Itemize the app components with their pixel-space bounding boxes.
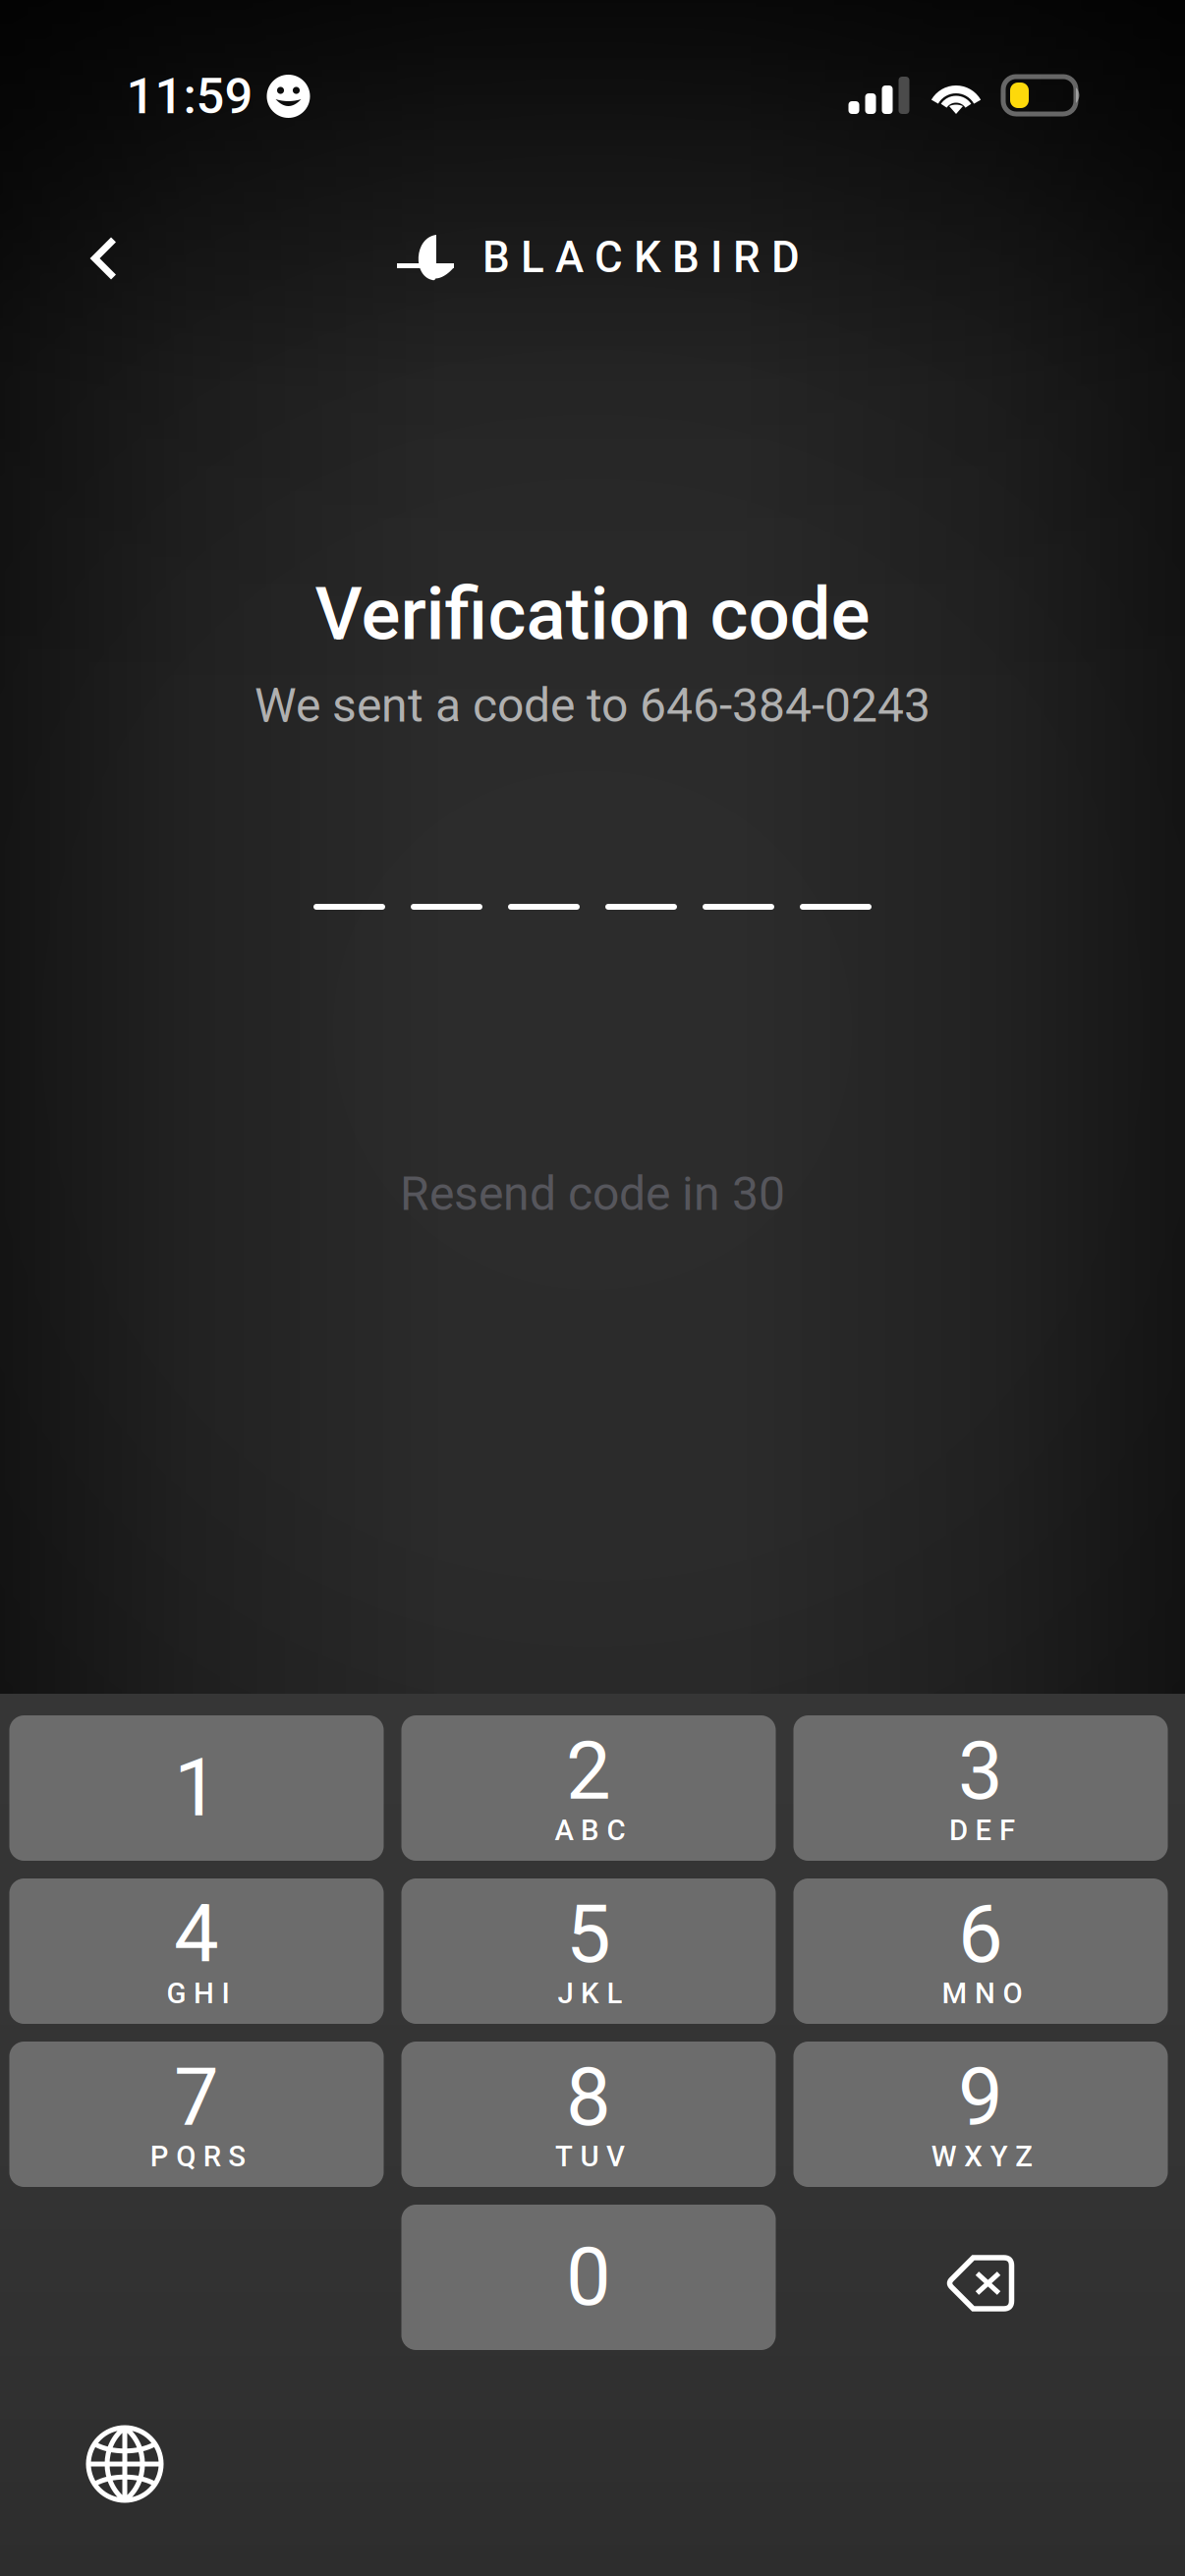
staticText: L — [521, 232, 544, 283]
button[interactable]: 9 — [793, 2042, 1168, 2187]
staticText: PQRS — [150, 2140, 246, 2173]
staticText: D — [771, 232, 800, 283]
button[interactable]: 5 — [401, 1878, 776, 2024]
staticText: 1 — [174, 1741, 219, 1835]
staticText: MNO — [942, 1977, 1022, 2010]
staticText: K — [634, 232, 661, 283]
button[interactable]: Back — [49, 202, 160, 314]
staticText: B — [672, 232, 700, 283]
button[interactable]: 4 — [9, 1878, 384, 2024]
button[interactable]: 6 — [793, 1878, 1168, 2024]
button[interactable]: 8 — [401, 2042, 776, 2187]
staticText: DEF — [949, 1813, 1015, 1847]
staticText: 0 — [566, 2230, 611, 2324]
staticText: 5 — [566, 1888, 611, 1981]
staticText: 11:59 — [126, 67, 253, 125]
staticText: B — [482, 232, 510, 283]
staticText: GHI — [167, 1977, 229, 2010]
button[interactable]: Change keyboard — [46, 2395, 203, 2533]
staticText: 7 — [174, 2051, 219, 2144]
staticText: Verification code — [315, 571, 870, 657]
staticText: 6 — [958, 1888, 1003, 1981]
staticText: 4 — [174, 1888, 219, 1981]
staticText: 8 — [566, 2051, 611, 2144]
staticText: 3 — [958, 1725, 1003, 1818]
button[interactable]: 7 — [9, 2042, 384, 2187]
staticText: C — [594, 232, 623, 283]
staticText: 2 — [566, 1725, 611, 1818]
button[interactable]: Resend code in 30 — [361, 1146, 824, 1241]
staticText: We sent a code to 646-384-0243 — [254, 678, 931, 733]
button[interactable]: 1 — [9, 1715, 384, 1861]
button[interactable]: 3 — [793, 1715, 1168, 1861]
staticText: I — [710, 232, 722, 283]
button[interactable]: 2 — [401, 1715, 776, 1861]
staticText: Resend code in 30 — [400, 1166, 785, 1221]
staticText: WXYZ — [931, 2140, 1033, 2173]
staticText: A — [555, 232, 584, 283]
button[interactable]: 0 — [401, 2205, 776, 2350]
staticText: R — [733, 232, 761, 283]
staticText: JKL — [558, 1977, 622, 2010]
staticText: TUV — [555, 2140, 625, 2173]
staticText: ABC — [555, 1813, 625, 1847]
staticText: 9 — [958, 2051, 1003, 2144]
button[interactable]: Delete — [793, 2205, 1168, 2350]
